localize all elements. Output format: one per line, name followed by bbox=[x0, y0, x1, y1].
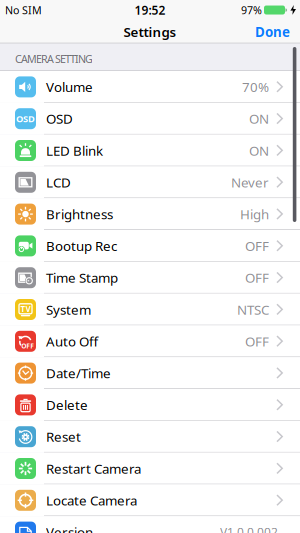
staticText: NTSC bbox=[237, 301, 269, 318]
button[interactable]: OFF bbox=[0, 325, 300, 357]
button[interactable]: OSD bbox=[0, 103, 300, 135]
staticText: High bbox=[240, 205, 269, 223]
staticText: Restart Camera bbox=[46, 460, 141, 477]
button[interactable]: Version bbox=[0, 516, 300, 533]
staticText: LED Blink bbox=[46, 142, 103, 159]
button[interactable]: Locate Camera bbox=[0, 484, 300, 516]
staticText: Never bbox=[231, 173, 269, 191]
staticText: Version bbox=[46, 523, 93, 533]
staticText: TV bbox=[20, 303, 30, 314]
staticText: Reset bbox=[46, 428, 81, 445]
button[interactable]: LED Blink bbox=[0, 135, 300, 166]
staticText: Time Stamp bbox=[46, 269, 118, 286]
staticText: ON bbox=[249, 110, 269, 127]
button[interactable]: Time Stamp bbox=[0, 262, 300, 294]
staticText: Done bbox=[255, 23, 290, 41]
staticText: OFF bbox=[21, 341, 34, 350]
staticText: LCD bbox=[46, 173, 71, 191]
staticText: Delete bbox=[46, 396, 88, 414]
staticText: Locate Camera bbox=[46, 491, 137, 509]
button[interactable]: Restart Camera bbox=[0, 453, 300, 484]
staticText: Date/Time bbox=[46, 364, 111, 382]
button[interactable]: Delete bbox=[0, 389, 300, 421]
staticText: V1.0.0.002 bbox=[220, 524, 278, 533]
staticText: OFF bbox=[245, 332, 269, 350]
button[interactable]: Brightness bbox=[0, 198, 300, 230]
button[interactable]: LCD bbox=[0, 166, 300, 198]
staticText: Bootup Rec bbox=[46, 237, 117, 255]
staticText: 19:52 bbox=[134, 2, 165, 18]
button[interactable]: Bootup Rec bbox=[0, 230, 300, 262]
button[interactable]: Volume bbox=[0, 71, 300, 103]
staticText: OFF bbox=[245, 269, 269, 286]
staticText: System bbox=[46, 301, 91, 318]
staticText: No SIM bbox=[5, 3, 42, 17]
staticText: OSD bbox=[46, 110, 73, 127]
button[interactable]: Date/Time bbox=[0, 357, 300, 389]
staticText: Settings bbox=[123, 23, 176, 41]
staticText: OSD bbox=[16, 112, 35, 125]
staticText: 97% bbox=[241, 3, 262, 17]
staticText: Volume bbox=[46, 78, 93, 96]
staticText: OFF bbox=[245, 237, 269, 255]
button[interactable]: TV bbox=[0, 294, 300, 325]
staticText: Auto Off bbox=[46, 332, 98, 350]
staticText: Brightness bbox=[46, 205, 113, 223]
staticText: CAMERA SETTING bbox=[15, 52, 93, 66]
button[interactable]: Done bbox=[255, 23, 300, 41]
staticText: ON bbox=[249, 142, 269, 159]
button[interactable]: Reset bbox=[0, 421, 300, 453]
staticText: 70% bbox=[242, 78, 269, 96]
